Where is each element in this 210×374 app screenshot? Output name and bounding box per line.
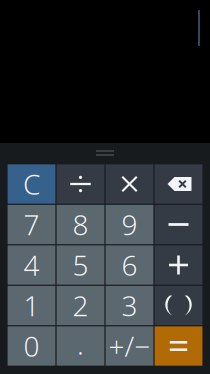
button[interactable]: 9 [106,205,153,244]
button[interactable]: 5 [57,245,104,285]
button[interactable]: 8 [57,205,104,244]
button[interactable]: 0 [8,326,55,366]
button[interactable]: 4 [8,245,55,285]
button[interactable]: 6 [106,245,153,285]
button[interactable]: 1 [8,286,55,325]
staticText: 2 [72,287,88,324]
button[interactable]: Equals [155,326,202,366]
staticText: 5 [72,246,88,284]
staticText: 7 [23,206,39,243]
button[interactable]: 2 [57,286,104,325]
staticText: 1 [23,287,39,324]
button[interactable]: Delete [155,164,202,204]
staticText: 9 [121,206,137,243]
staticText: C [23,165,40,203]
button[interactable]: C [8,164,55,204]
staticText: 8 [72,206,88,243]
staticText: . [77,325,84,363]
button[interactable]: Plus [155,245,202,285]
button[interactable]: Multiply [106,164,153,204]
staticText: 3 [121,287,137,324]
button[interactable]: +/− [106,326,153,366]
button[interactable]: Divide [57,164,104,204]
staticText: 0 [23,327,39,365]
staticText: 4 [23,246,39,284]
button[interactable]: 3 [106,286,153,325]
button[interactable]: 7 [8,205,55,244]
staticText: +/− [108,327,150,365]
staticText: 6 [121,246,137,284]
button[interactable]: Parentheses [155,286,202,325]
button[interactable]: Minus [155,205,202,244]
button[interactable]: . [57,326,104,366]
